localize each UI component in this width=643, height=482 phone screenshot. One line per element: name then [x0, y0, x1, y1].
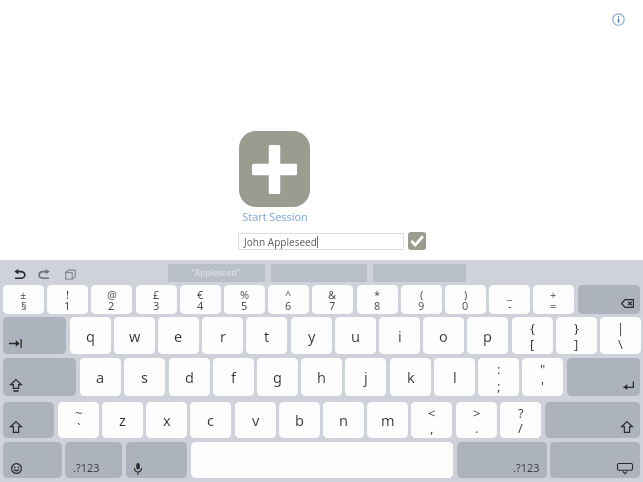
- button[interactable]: .?123: [65, 442, 122, 478]
- button[interactable]: @: [91, 285, 132, 314]
- button[interactable]: ": [522, 358, 563, 396]
- button[interactable]: c: [190, 402, 231, 438]
- staticText: 0: [462, 298, 469, 313]
- staticText: €: [197, 287, 204, 302]
- button[interactable]: *: [357, 285, 398, 314]
- staticText: w: [129, 326, 141, 346]
- button[interactable]: .?123: [457, 442, 547, 478]
- button[interactable]: !: [47, 285, 88, 314]
- button[interactable]: h: [301, 358, 342, 396]
- staticText: ~: [75, 404, 83, 422]
- button[interactable]: Caps lock: [3, 358, 76, 396]
- button[interactable]: >: [456, 402, 497, 438]
- button[interactable]: Tab: [3, 317, 66, 354]
- button[interactable]: Info: [608, 9, 628, 29]
- button[interactable]: &: [312, 285, 353, 314]
- staticText: +: [550, 287, 557, 302]
- button[interactable]: Backspace: [578, 285, 640, 314]
- button[interactable]: Shift: [3, 402, 54, 438]
- button[interactable]: Start Session: [224, 209, 325, 224]
- button[interactable]: f: [213, 358, 254, 396]
- button[interactable]: ): [445, 285, 486, 314]
- staticText: j: [364, 367, 368, 387]
- button[interactable]: Hide keyboard: [550, 442, 640, 478]
- staticText: n: [339, 410, 348, 430]
- button[interactable]: k: [390, 358, 431, 396]
- button[interactable]: |: [600, 317, 641, 354]
- button[interactable]: v: [235, 402, 276, 438]
- button[interactable]: Dictate: [126, 442, 187, 478]
- button[interactable]: (: [401, 285, 442, 314]
- button[interactable]: s: [124, 358, 165, 396]
- button[interactable]: a: [80, 358, 121, 396]
- button[interactable]: ^: [268, 285, 309, 314]
- staticText: a: [96, 367, 105, 387]
- button[interactable]: Emoji: [3, 442, 62, 478]
- button[interactable]: ~: [58, 402, 99, 438]
- button[interactable]: :: [478, 358, 519, 396]
- staticText: u: [351, 326, 360, 346]
- staticText: 3: [153, 298, 160, 313]
- staticText: x: [163, 410, 171, 430]
- staticText: /: [518, 419, 523, 437]
- button[interactable]: w: [114, 317, 155, 354]
- button[interactable]: Confirm: [408, 232, 426, 250]
- staticText: 7: [329, 298, 336, 313]
- button[interactable]: ?: [500, 402, 541, 438]
- staticText: @: [107, 287, 117, 302]
- button[interactable]: m: [367, 402, 408, 438]
- button[interactable]: d: [169, 358, 210, 396]
- button[interactable]: e: [158, 317, 199, 354]
- staticText: p: [483, 326, 492, 346]
- staticText: r: [220, 326, 226, 346]
- staticText: ±: [20, 287, 27, 302]
- button[interactable]: %: [224, 285, 265, 314]
- button[interactable]: t: [246, 317, 287, 354]
- button[interactable]: j: [345, 358, 386, 396]
- button[interactable]: o: [423, 317, 464, 354]
- button[interactable]: n: [323, 402, 364, 438]
- button[interactable]: John Appleseed: [238, 233, 404, 250]
- button[interactable]: _: [489, 285, 530, 314]
- button[interactable]: z: [102, 402, 143, 438]
- button[interactable]: i: [379, 317, 420, 354]
- button[interactable]: p: [467, 317, 508, 354]
- button[interactable]: q: [70, 317, 111, 354]
- staticText: d: [185, 367, 194, 387]
- button[interactable]: {: [512, 317, 553, 354]
- button[interactable]: }: [556, 317, 597, 354]
- button[interactable]: b: [279, 402, 320, 438]
- button[interactable]: Start Session: [239, 131, 310, 207]
- button[interactable]: x: [146, 402, 187, 438]
- staticText: .?123: [513, 460, 540, 475]
- button[interactable]: ±: [3, 285, 44, 314]
- staticText: ]: [574, 335, 579, 353]
- button[interactable]: u: [335, 317, 376, 354]
- button[interactable]: r: [202, 317, 243, 354]
- button[interactable]: Undo: [10, 264, 30, 284]
- staticText: 9: [418, 298, 425, 313]
- button[interactable]: l: [434, 358, 475, 396]
- button[interactable]: Paste: [60, 264, 80, 284]
- staticText: l: [453, 367, 457, 387]
- button[interactable]: £: [136, 285, 177, 314]
- staticText: %: [240, 287, 250, 302]
- staticText: -: [508, 298, 512, 313]
- button[interactable]: y: [291, 317, 332, 354]
- button[interactable]: g: [257, 358, 298, 396]
- button[interactable]: "Appleseed": [168, 264, 265, 282]
- staticText: _: [507, 287, 512, 302]
- button[interactable]: Shift: [545, 402, 640, 438]
- staticText: 2: [108, 298, 115, 313]
- staticText: v: [252, 410, 260, 430]
- staticText: 6: [285, 298, 292, 313]
- button[interactable]: <: [411, 402, 452, 438]
- button[interactable]: Redo: [34, 264, 54, 284]
- staticText: <: [428, 404, 436, 422]
- button[interactable]: +: [533, 285, 574, 314]
- button[interactable]: €: [180, 285, 221, 314]
- button[interactable]: Return: [567, 358, 640, 396]
